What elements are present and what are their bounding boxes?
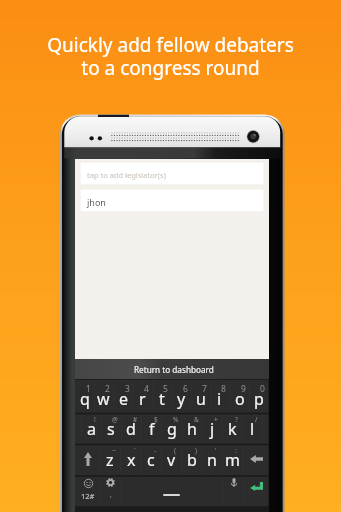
button[interactable]: Backspace	[244, 443, 269, 475]
button[interactable]: &	[182, 414, 202, 445]
staticText: %	[173, 415, 179, 424]
staticText: t	[159, 388, 165, 410]
button[interactable]: Voice input	[223, 476, 244, 507]
staticText: 0	[260, 383, 265, 395]
staticText: 5	[163, 383, 168, 395]
staticText: /	[255, 415, 258, 424]
staticText: h	[187, 418, 197, 440]
staticText: !	[94, 415, 96, 424]
staticText: l	[250, 418, 255, 440]
staticText: +	[214, 415, 218, 424]
staticText: f	[149, 418, 155, 440]
staticText: tap to add legislator(s)	[87, 170, 166, 180]
staticText: x	[127, 449, 136, 471]
staticText: d	[126, 418, 136, 440]
button[interactable]: '	[202, 445, 222, 477]
button[interactable]: 4	[133, 379, 152, 414]
staticText: 4	[144, 383, 149, 395]
button[interactable]: 2	[94, 379, 113, 414]
staticText: v	[167, 449, 176, 471]
staticText: a	[87, 418, 96, 440]
button[interactable]: Shift	[75, 443, 100, 475]
staticText: i	[217, 388, 222, 410]
button[interactable]: 6	[172, 379, 191, 414]
staticText: 12#	[81, 491, 95, 501]
staticText: '	[215, 446, 217, 455]
staticText: q	[80, 388, 90, 410]
staticText: Return to dashboard	[134, 364, 214, 375]
button[interactable]: ?	[222, 414, 242, 445]
button[interactable]: +	[202, 414, 222, 445]
button[interactable]: @	[101, 414, 121, 445]
staticText: $	[154, 415, 158, 424]
button[interactable]: (	[161, 445, 181, 477]
button[interactable]: 9	[230, 379, 249, 414]
staticText: n	[207, 449, 217, 471]
staticText: p	[254, 388, 264, 410]
staticText: c	[147, 449, 155, 471]
staticText: :	[235, 446, 237, 455]
button[interactable]: tap to add legislator(s)	[80, 162, 264, 185]
button[interactable]: ~	[100, 445, 120, 477]
staticText: j	[210, 418, 215, 440]
staticText: 9	[241, 383, 246, 395]
staticText: y	[177, 388, 186, 410]
staticText: )	[195, 446, 197, 455]
staticText: jhon	[87, 196, 106, 208]
staticText: 7	[202, 383, 207, 395]
staticText: r	[139, 388, 146, 410]
staticText: g	[167, 418, 177, 440]
button[interactable]: 8	[210, 379, 229, 414]
staticText: m	[225, 449, 240, 471]
staticText: s	[107, 418, 115, 440]
staticText: #	[133, 415, 138, 424]
staticText: o	[235, 388, 245, 410]
button[interactable]: %	[162, 414, 182, 445]
staticText: ~	[112, 446, 116, 455]
button[interactable]: )	[182, 445, 202, 477]
button[interactable]: Enter	[244, 476, 269, 507]
staticText: 3	[125, 383, 130, 395]
button[interactable]: jhon	[80, 189, 264, 212]
button[interactable]: /	[242, 414, 262, 445]
button[interactable]: Symbols keyboard	[75, 476, 100, 507]
staticText: ?	[235, 415, 238, 424]
staticText: b	[187, 449, 197, 471]
staticText: &	[194, 415, 199, 424]
staticText: 1	[86, 383, 91, 395]
staticText: (	[174, 446, 176, 455]
button[interactable]: 3	[114, 379, 133, 414]
staticText: `	[134, 446, 136, 455]
button[interactable]: :	[222, 445, 242, 477]
staticText: @	[112, 415, 118, 424]
button[interactable]: 5	[152, 379, 171, 414]
button[interactable]: Space	[121, 476, 222, 507]
button[interactable]: !	[81, 414, 101, 445]
button[interactable]: #	[121, 414, 141, 445]
button[interactable]: Return to dashboard	[75, 359, 269, 379]
staticText: 6	[183, 383, 188, 395]
staticText: z	[106, 449, 114, 471]
staticText: 8	[221, 383, 226, 395]
staticText: w	[97, 388, 110, 410]
staticText: -	[154, 446, 157, 455]
staticText: u	[196, 388, 206, 410]
button[interactable]: 7	[191, 379, 210, 414]
staticText: 2	[105, 383, 110, 395]
button[interactable]: -	[141, 445, 161, 477]
button[interactable]: 1	[75, 379, 94, 414]
button[interactable]: 0	[249, 379, 268, 414]
staticText: k	[228, 418, 237, 440]
button[interactable]: Keyboard settings	[100, 476, 121, 507]
staticText: Quickly add fellow debaters to a congres…	[0, 32, 341, 81]
staticText: e	[119, 388, 129, 410]
button[interactable]: $	[142, 414, 162, 445]
staticText: ,	[110, 490, 112, 500]
button[interactable]: `	[121, 445, 141, 477]
